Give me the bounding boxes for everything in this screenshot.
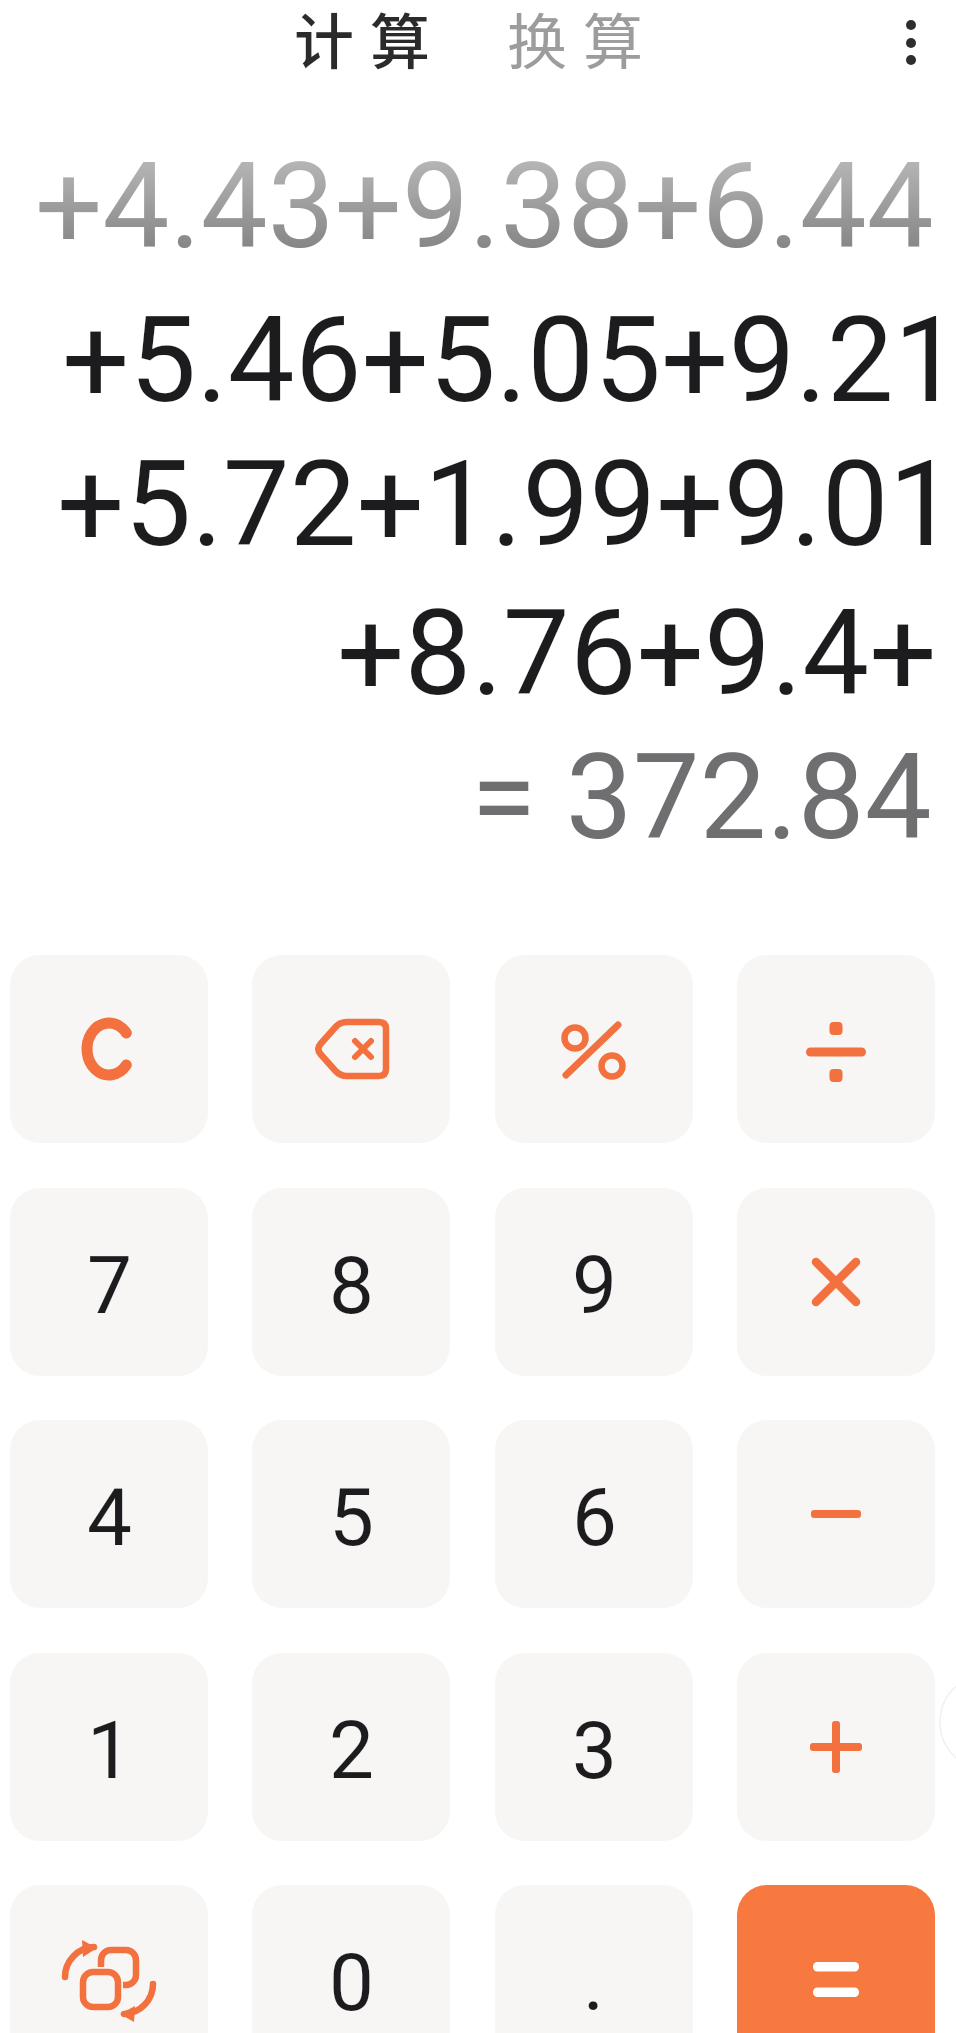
button[interactable]: 5 xyxy=(252,1420,450,1608)
staticText: +4.43+9.38+6.44 xyxy=(35,137,934,276)
staticText: 0 xyxy=(329,1936,374,2030)
staticText: 9 xyxy=(572,1239,617,1333)
staticText: 7 xyxy=(87,1239,132,1333)
button[interactable]: 3 xyxy=(495,1653,693,1841)
button[interactable] xyxy=(495,955,693,1143)
button[interactable] xyxy=(737,1420,935,1608)
button[interactable] xyxy=(737,1885,935,2033)
button[interactable]: 2 xyxy=(252,1653,450,1841)
staticText: 5 xyxy=(329,1471,374,1565)
staticText: 6 xyxy=(572,1471,617,1565)
button[interactable]: 0 xyxy=(252,1885,450,2033)
button[interactable] xyxy=(737,1188,935,1376)
staticText: 1 xyxy=(87,1704,132,1798)
button[interactable]: 换算 xyxy=(507,0,659,81)
button[interactable] xyxy=(737,1653,935,1841)
staticText: 2 xyxy=(329,1704,374,1798)
button[interactable]: . xyxy=(495,1885,693,2033)
staticText: 3 xyxy=(572,1704,617,1798)
staticText: . xyxy=(583,1936,605,2030)
button[interactable]: 1 xyxy=(10,1653,208,1841)
button[interactable] xyxy=(10,1885,208,2033)
staticText: +5.72+1.99+9.01 xyxy=(57,435,956,574)
staticText: = 372.84 xyxy=(471,728,932,867)
button[interactable] xyxy=(10,955,208,1143)
button[interactable] xyxy=(884,10,938,76)
button[interactable]: 7 xyxy=(10,1188,208,1376)
button[interactable]: 6 xyxy=(495,1420,693,1608)
button[interactable]: 计算 xyxy=(294,0,446,81)
button[interactable] xyxy=(737,955,935,1143)
button[interactable]: 8 xyxy=(252,1188,450,1376)
button[interactable] xyxy=(252,955,450,1143)
staticText: 8 xyxy=(329,1239,374,1333)
button[interactable]: 9 xyxy=(495,1188,693,1376)
staticText: 计算 xyxy=(294,0,446,81)
staticText: 4 xyxy=(87,1471,132,1565)
staticText: 换算 xyxy=(507,0,659,81)
button[interactable]: 4 xyxy=(10,1420,208,1608)
staticText: +5.46+5.05+9.21 xyxy=(62,291,956,430)
staticText: +8.76+9.4+ xyxy=(337,584,937,723)
